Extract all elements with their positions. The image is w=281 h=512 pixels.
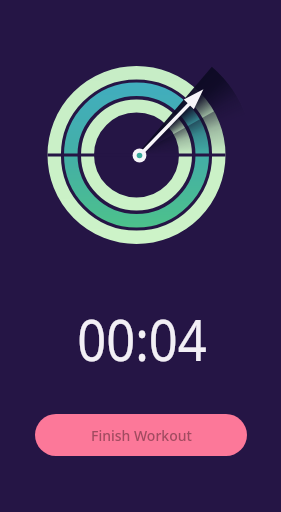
staticText: 00:04 [77,300,207,378]
staticText: Finish Workout [91,426,192,445]
button[interactable]: Finish Workout [35,414,247,456]
